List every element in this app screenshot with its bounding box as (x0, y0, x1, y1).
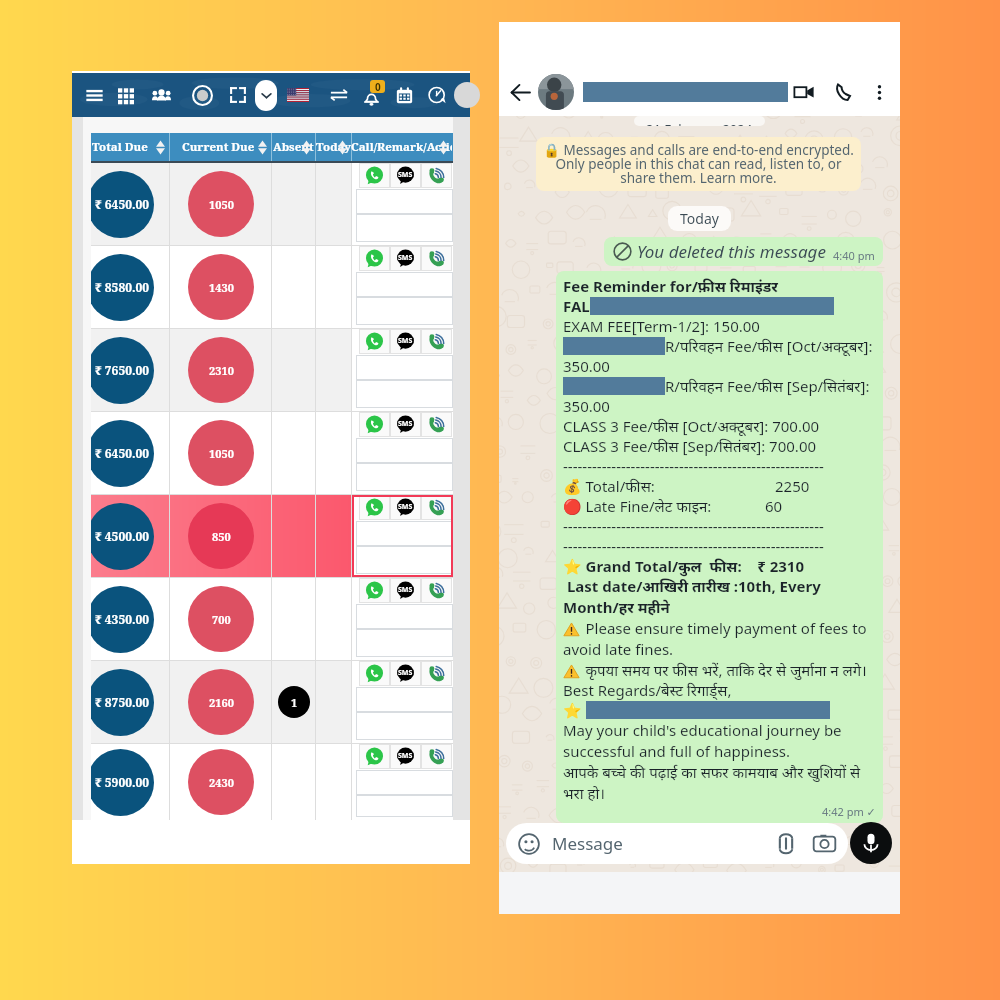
staticText: ₹ 8580.00 (95, 279, 150, 295)
button[interactable]: Current Due (170, 133, 272, 161)
button[interactable]: Expand (255, 80, 277, 111)
button[interactable]: Call (830, 78, 858, 106)
staticText: ₹ 5900.00 (95, 774, 150, 790)
button[interactable]: WhatsApp (359, 661, 390, 686)
button[interactable]: Total Due (91, 133, 170, 161)
staticText: Please ensure timely payment of fees to … (563, 618, 876, 660)
staticText: SMS (398, 419, 413, 429)
staticText: आपके बच्चे की पढ़ाई का सफर कामयाब और खुश… (563, 762, 876, 804)
button[interactable]: SMS (390, 661, 421, 686)
button[interactable]: Profile (454, 82, 480, 108)
staticText: EXAM FEE[Term-1/2]: 150.00 (563, 316, 760, 336)
button[interactable]: ₹ 5900.00 (91, 744, 453, 820)
staticText: 🔒 Messages and calls are end-to-end encr… (543, 141, 854, 187)
button[interactable]: SMS (390, 744, 421, 769)
button[interactable]: Camera (813, 832, 836, 855)
button[interactable]: ₹ 8750.00 (91, 661, 453, 743)
staticText: 0 (375, 80, 381, 93)
button[interactable]: Back (505, 77, 535, 107)
staticText: ₹ 4500.00 (95, 528, 150, 544)
button[interactable]: SMS (390, 578, 421, 603)
staticText: 1430 (209, 280, 234, 295)
button[interactable]: WhatsApp (359, 578, 390, 603)
staticText: Fee Reminder for/फ़ीस रिमाइंडर (563, 276, 778, 296)
button[interactable]: Calendar (389, 79, 419, 111)
button[interactable]: ₹ 4500.00 (91, 495, 453, 577)
staticText: May your child's educational journey be … (563, 720, 876, 762)
staticText: CLASS 3 Fee/फीस [Oct/अक्टूबर]: 700.00 (563, 416, 820, 436)
button[interactable]: Apps (111, 79, 141, 111)
button[interactable]: Today (316, 133, 352, 161)
staticText: 1 (291, 695, 298, 710)
button[interactable]: Profile photo (538, 74, 574, 110)
staticText: ----------------------------------------… (563, 536, 824, 556)
button[interactable]: Call (421, 246, 452, 271)
staticText: 700 (212, 612, 231, 627)
staticText: 60 (765, 496, 783, 516)
button[interactable]: Menu (79, 79, 109, 111)
button[interactable]: Switch (324, 79, 354, 111)
button[interactable]: WhatsApp (359, 163, 390, 188)
button[interactable]: Language (287, 88, 309, 102)
button[interactable]: SMS (390, 412, 421, 437)
button[interactable]: SMS (390, 163, 421, 188)
staticText: 💰 Total/फीस: (563, 476, 655, 496)
button[interactable]: Call (421, 163, 452, 188)
button[interactable]: Call/Remark/Action (352, 133, 453, 161)
button[interactable]: Record (187, 79, 217, 111)
staticText: ----------------------------------------… (563, 516, 824, 536)
staticText: ₹ 6450.00 (95, 445, 150, 461)
staticText: CLASS 3 Fee/फीस [Sep/सितंबर]: 700.00 (563, 436, 817, 456)
staticText: Call/Remark/Action (351, 139, 452, 155)
button[interactable]: Call (421, 329, 452, 354)
button[interactable]: ₹ 8580.00 (91, 246, 453, 328)
button[interactable]: Call (421, 744, 452, 769)
staticText: ⭐ (563, 700, 586, 720)
button[interactable]: ₹ 7650.00 (91, 329, 453, 411)
staticText: SMS (398, 751, 413, 761)
button[interactable]: Call (421, 412, 452, 437)
button[interactable]: Call (421, 661, 452, 686)
staticText: 4:40 pm (833, 248, 875, 263)
button[interactable]: WhatsApp (359, 495, 390, 520)
button[interactable]: WhatsApp (359, 744, 390, 769)
button[interactable]: Voice message (850, 822, 892, 864)
staticText: ₹ 6450.00 (95, 196, 150, 212)
staticText: ₹ 7650.00 (95, 362, 150, 378)
staticText: Current Due (182, 139, 255, 155)
button[interactable]: Message (518, 823, 836, 864)
staticText: SMS (398, 502, 413, 512)
button[interactable]: Call (421, 578, 452, 603)
button[interactable]: WhatsApp (359, 329, 390, 354)
button[interactable]: Notifications (356, 79, 386, 111)
staticText: 350.00 (563, 356, 610, 376)
staticText: Today (316, 139, 351, 155)
button[interactable]: Fullscreen (223, 79, 253, 111)
button[interactable]: ₹ 6450.00 (91, 412, 453, 494)
staticText: Best Regards/बेस्ट रिगार्ड्स, (563, 680, 732, 700)
button[interactable]: SMS (390, 495, 421, 520)
button[interactable]: History (422, 79, 452, 111)
staticText: 21 February 2024 (646, 120, 753, 126)
staticText: Today (680, 209, 719, 228)
button[interactable]: Call (421, 495, 452, 520)
staticText: 1050 (209, 197, 234, 212)
staticText: 2430 (209, 775, 234, 790)
staticText: Total Due (92, 139, 148, 155)
button[interactable]: SMS (390, 246, 421, 271)
button[interactable]: Video call (790, 78, 818, 106)
staticText: ₹ 8750.00 (95, 694, 150, 710)
staticText: R/परिवहन Fee/फीस [Oct/अक्टूबर]: (665, 336, 873, 356)
button[interactable]: SMS (390, 329, 421, 354)
staticText: FAL (563, 296, 590, 316)
button[interactable]: Users (146, 79, 176, 111)
staticText: Absent (273, 139, 314, 155)
button[interactable]: WhatsApp (359, 246, 390, 271)
button[interactable]: WhatsApp (359, 412, 390, 437)
staticText: SMS (398, 170, 413, 180)
button[interactable]: More options (866, 79, 892, 105)
button[interactable]: ₹ 4350.00 (91, 578, 453, 660)
button[interactable]: Absent (272, 133, 316, 161)
button[interactable]: Attach (775, 833, 797, 855)
button[interactable]: ₹ 6450.00 (91, 163, 453, 245)
